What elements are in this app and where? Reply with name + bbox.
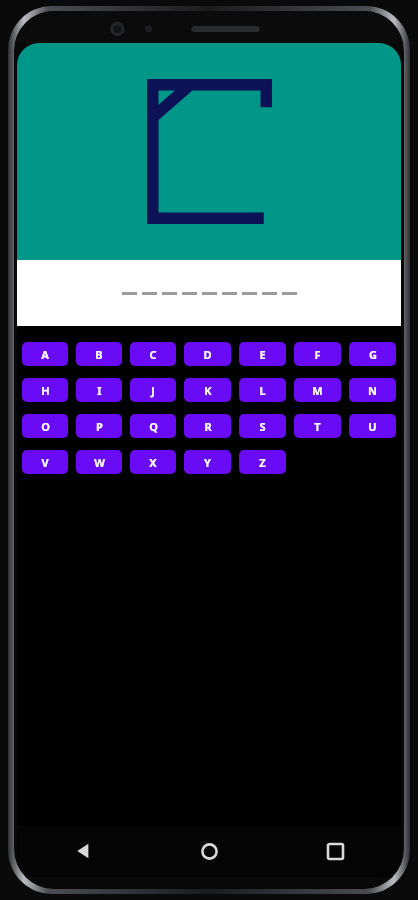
staticText: Z [259, 455, 266, 470]
staticText: A [41, 347, 49, 362]
button[interactable]: X [130, 450, 176, 474]
staticText: V [41, 455, 49, 470]
button[interactable]: N [349, 378, 396, 402]
button[interactable]: Z [239, 450, 286, 474]
staticText: M [312, 383, 323, 398]
button[interactable]: E [239, 342, 286, 366]
button[interactable]: K [184, 378, 231, 402]
staticText: R [204, 419, 212, 434]
staticText: N [368, 383, 377, 398]
staticText: S [259, 419, 266, 434]
staticText: B [95, 347, 103, 362]
button[interactable]: Home [189, 831, 229, 871]
button[interactable]: T [294, 414, 341, 438]
button[interactable]: A [22, 342, 68, 366]
button[interactable]: C [130, 342, 176, 366]
staticText: U [368, 419, 377, 434]
staticText: I [97, 383, 102, 398]
button[interactable]: B [76, 342, 122, 366]
staticText: L [259, 383, 266, 398]
button[interactable]: Recent apps [315, 831, 355, 871]
button[interactable]: L [239, 378, 286, 402]
button[interactable]: Y [184, 450, 231, 474]
button[interactable]: Q [130, 414, 176, 438]
button[interactable]: U [349, 414, 396, 438]
staticText: D [203, 347, 212, 362]
button[interactable]: W [76, 450, 122, 474]
staticText: Y [204, 455, 211, 470]
staticText: K [204, 383, 212, 398]
button[interactable]: H [22, 378, 68, 402]
staticText: T [314, 419, 321, 434]
staticText: O [41, 419, 50, 434]
staticText: W [94, 455, 105, 470]
button[interactable]: G [349, 342, 396, 366]
staticText: P [96, 419, 103, 434]
staticText: G [369, 347, 377, 362]
button[interactable]: Back [63, 831, 103, 871]
button[interactable]: I [76, 378, 122, 402]
button[interactable]: J [130, 378, 176, 402]
staticText: F [314, 347, 321, 362]
button[interactable]: O [22, 414, 68, 438]
button[interactable]: M [294, 378, 341, 402]
button[interactable]: R [184, 414, 231, 438]
staticText: E [259, 347, 266, 362]
button[interactable]: S [239, 414, 286, 438]
button[interactable]: D [184, 342, 231, 366]
button[interactable]: P [76, 414, 122, 438]
staticText: J [151, 383, 155, 398]
staticText: H [41, 383, 50, 398]
staticText: C [149, 347, 157, 362]
button[interactable]: F [294, 342, 341, 366]
button[interactable]: V [22, 450, 68, 474]
staticText: X [149, 455, 157, 470]
staticText: Q [149, 419, 158, 434]
